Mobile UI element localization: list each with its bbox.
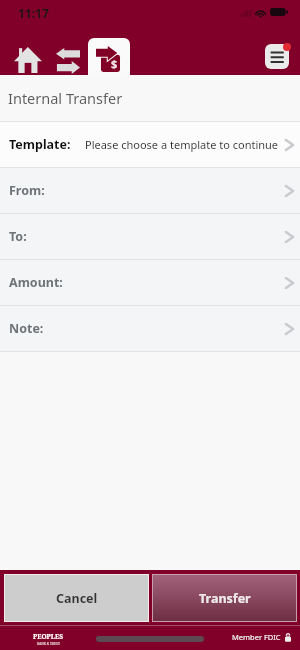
button[interactable]: Internal Transfer — [88, 38, 130, 75]
button[interactable]: Note: — [0, 306, 300, 351]
button[interactable]: Cancel — [5, 575, 148, 621]
button[interactable]: Transfer — [153, 575, 296, 621]
button[interactable]: To: — [0, 214, 300, 259]
staticText: Cancel — [56, 590, 98, 607]
staticText: BANK & TRUST — [37, 642, 60, 646]
staticText: PEOPLES — [33, 632, 63, 641]
button[interactable]: Amount: — [0, 260, 300, 305]
staticText: Please choose a template to continue — [85, 137, 279, 152]
staticText: Member FDIC — [232, 632, 281, 642]
staticText: Transfer — [199, 590, 251, 607]
button[interactable]: Home — [6, 38, 50, 75]
button[interactable]: Transfers — [50, 38, 88, 75]
staticText: $ — [111, 56, 118, 71]
staticText: Template: — [9, 136, 71, 153]
staticText: 11:17 — [18, 5, 49, 21]
button[interactable]: Template: — [0, 122, 300, 167]
staticText: To: — [9, 228, 27, 245]
button[interactable]: From: — [0, 168, 300, 213]
staticText: Amount: — [9, 274, 63, 291]
staticText: Note: — [9, 320, 44, 337]
staticText: Internal Transfer — [8, 88, 123, 108]
button[interactable]: Menu — [260, 39, 292, 71]
staticText: From: — [9, 182, 45, 199]
